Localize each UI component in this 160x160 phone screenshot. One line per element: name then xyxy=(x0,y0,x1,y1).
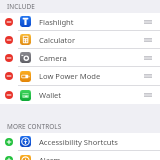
button[interactable]: Remove Wallet xyxy=(0,86,160,104)
button[interactable]: Add Alarm xyxy=(0,151,160,160)
other: Reorder Camera xyxy=(136,49,160,66)
other: Remove Low Power Mode xyxy=(5,72,13,80)
other: Add Alarm xyxy=(5,156,13,160)
staticText: Wallet xyxy=(39,90,62,100)
other: Reorder Low Power Mode xyxy=(136,67,160,85)
other: Reorder Flashlight xyxy=(136,13,160,30)
other: Remove Camera xyxy=(5,54,13,62)
button[interactable]: Remove Calculator xyxy=(0,31,160,49)
staticText: Camera xyxy=(39,53,67,63)
other: Add Accessibility Shortcuts xyxy=(5,138,13,146)
other: Reorder Calculator xyxy=(136,31,160,48)
staticText: Alarm xyxy=(39,155,61,160)
staticText: Flashlight xyxy=(39,17,74,27)
staticText: Accessibility Shortcuts xyxy=(39,137,118,147)
button[interactable]: Remove Camera xyxy=(0,49,160,67)
staticText: Calculator xyxy=(39,35,76,45)
other: Remove Flashlight xyxy=(5,18,13,26)
staticText: INCLUDE xyxy=(7,2,35,11)
button[interactable]: Remove Flashlight xyxy=(0,13,160,31)
other: Remove Calculator xyxy=(5,36,13,44)
button[interactable]: Remove Low Power Mode xyxy=(0,67,160,86)
staticText: Low Power Mode xyxy=(39,71,101,81)
other: Remove Wallet xyxy=(5,91,13,99)
staticText: MORE CONTROLS xyxy=(7,122,62,131)
button[interactable]: Add Accessibility Shortcuts xyxy=(0,133,160,151)
other: Reorder Wallet xyxy=(136,86,160,104)
